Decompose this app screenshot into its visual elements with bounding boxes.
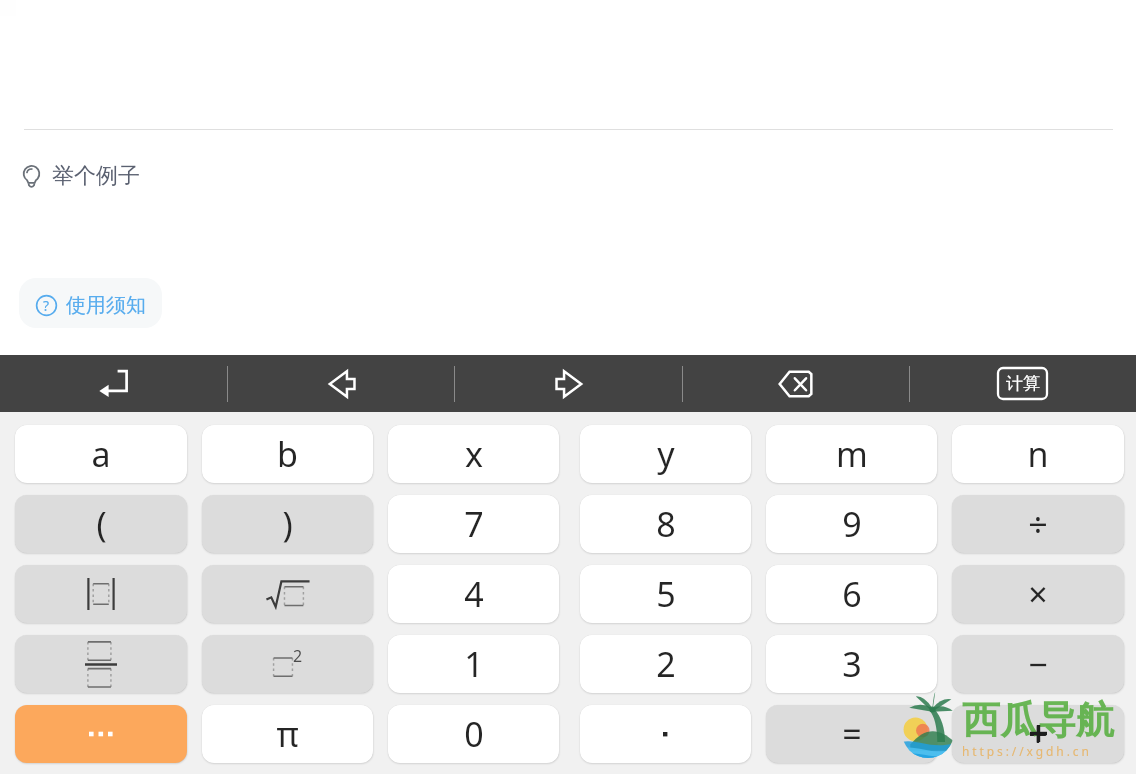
staticText: x bbox=[465, 431, 483, 477]
staticText: https://xgdh.cn bbox=[962, 743, 1092, 759]
button[interactable]: × bbox=[952, 565, 1124, 623]
button[interactable]: ÷ bbox=[952, 495, 1124, 553]
button[interactable]: 举个例子 bbox=[21, 162, 142, 190]
button[interactable]: 8 bbox=[580, 495, 751, 553]
button[interactable]: ) bbox=[202, 495, 373, 553]
staticText: ) bbox=[282, 501, 293, 547]
staticText: = bbox=[842, 711, 862, 757]
button[interactable]: 4 bbox=[388, 565, 559, 623]
button[interactable]: 0 bbox=[388, 705, 559, 763]
button[interactable]: 5 bbox=[580, 565, 751, 623]
staticText: a bbox=[91, 431, 111, 477]
staticText: + bbox=[1028, 711, 1048, 757]
button[interactable]: − bbox=[952, 635, 1124, 693]
button[interactable]: π bbox=[202, 705, 373, 763]
button[interactable]: More symbols bbox=[15, 705, 187, 763]
button[interactable]: = bbox=[766, 705, 937, 763]
staticText: 7 bbox=[464, 501, 484, 547]
staticText: 4 bbox=[464, 571, 484, 617]
staticText: 举个例子 bbox=[52, 162, 140, 190]
button[interactable]: Move left bbox=[228, 355, 455, 412]
staticText: 1 bbox=[464, 641, 484, 687]
button[interactable]: 6 bbox=[766, 565, 937, 623]
staticText: 2 bbox=[293, 645, 303, 667]
staticText: ( bbox=[96, 501, 107, 547]
staticText: 2 bbox=[656, 641, 676, 687]
button[interactable]: ? bbox=[19, 278, 162, 328]
button[interactable]: Enter bbox=[0, 355, 228, 412]
button[interactable]: a bbox=[15, 425, 187, 483]
staticText: m bbox=[836, 431, 868, 477]
staticText: 9 bbox=[842, 501, 862, 547]
staticText: b bbox=[277, 431, 298, 477]
staticText: ? bbox=[43, 296, 50, 315]
staticText: 5 bbox=[656, 571, 676, 617]
staticText: 计算 bbox=[1006, 373, 1040, 394]
staticText: ÷ bbox=[1028, 501, 1048, 547]
button[interactable]: Absolute value bbox=[15, 565, 187, 623]
button[interactable]: Square root bbox=[202, 565, 373, 623]
staticText: π bbox=[276, 711, 299, 757]
button[interactable]: Backspace bbox=[682, 355, 909, 412]
button[interactable]: b bbox=[202, 425, 373, 483]
button[interactable]: + bbox=[952, 705, 1124, 763]
button[interactable]: Calculate bbox=[909, 355, 1136, 412]
button[interactable]: 7 bbox=[388, 495, 559, 553]
staticText: 西瓜导航 bbox=[962, 696, 1114, 744]
button[interactable]: m bbox=[766, 425, 937, 483]
staticText: 8 bbox=[656, 501, 676, 547]
staticText: − bbox=[1028, 641, 1048, 687]
staticText: 3 bbox=[842, 641, 862, 687]
button[interactable]: 3 bbox=[766, 635, 937, 693]
staticText: y bbox=[657, 431, 675, 477]
staticText: n bbox=[1027, 431, 1049, 477]
button[interactable]: 9 bbox=[766, 495, 937, 553]
button[interactable]: 1 bbox=[388, 635, 559, 693]
button[interactable]: 2 bbox=[580, 635, 751, 693]
staticText: 使用须知 bbox=[66, 293, 146, 318]
button[interactable]: x bbox=[388, 425, 559, 483]
button[interactable]: Decimal point bbox=[580, 705, 751, 763]
staticText: × bbox=[1028, 571, 1048, 617]
button[interactable]: ( bbox=[15, 495, 187, 553]
button[interactable]: Fraction bbox=[15, 635, 187, 693]
staticText: 6 bbox=[842, 571, 862, 617]
staticText: 0 bbox=[464, 711, 484, 757]
button[interactable]: Square bbox=[202, 635, 373, 693]
button[interactable]: y bbox=[580, 425, 751, 483]
button[interactable]: n bbox=[952, 425, 1124, 483]
button[interactable]: Move right bbox=[455, 355, 682, 412]
